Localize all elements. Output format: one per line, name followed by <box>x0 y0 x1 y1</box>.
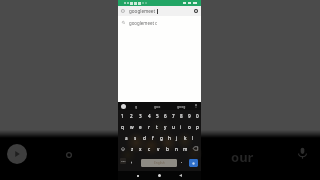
staticText: h <box>168 135 171 141</box>
staticText: y <box>164 124 167 130</box>
staticText: n <box>175 146 178 152</box>
staticText: goo <box>154 104 161 109</box>
staticText: o <box>188 124 191 130</box>
staticText: r <box>148 124 150 130</box>
button[interactable]: Play <box>7 144 27 164</box>
staticText: a <box>125 135 128 141</box>
staticText: 9 <box>188 113 191 119</box>
staticText: ?123 <box>121 160 126 163</box>
staticText: our <box>231 148 254 166</box>
staticText: b <box>166 146 169 152</box>
staticText: t <box>156 124 158 130</box>
staticText: s <box>134 135 137 141</box>
staticText: v <box>157 146 160 152</box>
staticText: i <box>180 124 182 130</box>
staticText: q <box>121 124 124 130</box>
staticText: g <box>160 135 163 141</box>
staticText: z <box>131 146 134 152</box>
button[interactable]: Voice search <box>294 145 311 162</box>
staticText: g <box>135 104 138 109</box>
staticText: e <box>139 124 142 130</box>
button[interactable]: Volume <box>61 147 76 162</box>
staticText: k <box>184 135 187 141</box>
staticText: u <box>172 124 175 130</box>
staticText: 7 <box>172 113 175 119</box>
staticText: goog <box>177 104 186 109</box>
staticText: 4 <box>148 113 151 119</box>
staticText: m <box>183 146 188 152</box>
staticText: 5 <box>156 113 159 119</box>
staticText: 2 <box>130 113 133 119</box>
staticText: p <box>196 124 199 130</box>
staticText: x <box>139 146 142 152</box>
staticText: 6 <box>164 113 167 119</box>
staticText: googlemeet c <box>129 20 158 26</box>
staticText: English <box>154 161 165 165</box>
staticText: . <box>181 158 183 164</box>
staticText: c <box>148 146 151 152</box>
staticText: 0 <box>196 113 199 119</box>
staticText: 3 <box>139 113 142 119</box>
staticText: w <box>130 124 134 130</box>
staticText: l <box>192 135 194 141</box>
staticText: 8 <box>180 113 183 119</box>
staticText: googlemeet <box>129 8 156 14</box>
staticText: j <box>176 135 178 141</box>
staticText: f <box>152 135 154 141</box>
staticText: 1 <box>121 113 124 119</box>
staticText: d <box>143 135 146 141</box>
staticText: , <box>131 158 133 164</box>
